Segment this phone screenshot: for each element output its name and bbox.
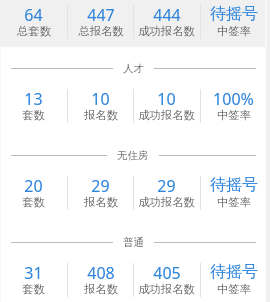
staticText: 31 <box>24 262 43 284</box>
staticText: 20 <box>24 175 43 197</box>
staticText: 报名数 <box>84 282 118 296</box>
staticText: 中签率 <box>217 108 251 122</box>
staticText: 29 <box>91 175 110 197</box>
button[interactable]: 待摇号 <box>200 175 267 215</box>
staticText: 成功报名数 <box>138 24 195 38</box>
button[interactable]: 447 <box>67 4 134 44</box>
staticText: 无住房 <box>117 149 149 162</box>
button[interactable]: 待摇号 <box>200 4 267 44</box>
button[interactable]: 31 <box>0 262 67 302</box>
staticText: 待摇号 <box>210 175 258 195</box>
button[interactable]: 444 <box>133 4 200 44</box>
staticText: 447 <box>87 4 115 26</box>
button[interactable]: 29 <box>67 175 134 215</box>
staticText: 成功报名数 <box>138 195 195 209</box>
staticText: 套数 <box>22 282 45 296</box>
staticText: 100% <box>213 88 254 110</box>
staticText: 13 <box>24 88 43 110</box>
staticText: 报名数 <box>84 195 118 209</box>
button[interactable]: 408 <box>67 262 134 302</box>
button[interactable]: 20 <box>0 175 67 215</box>
staticText: 29 <box>157 175 176 197</box>
button[interactable]: 待摇号 <box>200 262 267 302</box>
staticText: 成功报名数 <box>138 108 195 122</box>
staticText: 待摇号 <box>210 262 258 282</box>
staticText: 总套数 <box>17 24 51 38</box>
staticText: 中签率 <box>217 282 251 296</box>
button[interactable]: 10 <box>133 88 200 128</box>
button[interactable]: 29 <box>133 175 200 215</box>
button[interactable]: 100% <box>200 88 267 128</box>
staticText: 报名数 <box>84 108 118 122</box>
staticText: 人才 <box>123 62 144 75</box>
staticText: 中签率 <box>217 195 251 209</box>
staticText: 10 <box>157 88 176 110</box>
button[interactable]: 405 <box>133 262 200 302</box>
staticText: 总报名数 <box>78 24 124 38</box>
staticText: 64 <box>24 4 43 26</box>
button[interactable]: 10 <box>67 88 134 128</box>
button[interactable]: 13 <box>0 88 67 128</box>
staticText: 10 <box>91 88 110 110</box>
staticText: 成功报名数 <box>138 282 195 296</box>
staticText: 408 <box>87 262 115 284</box>
staticText: 中签率 <box>217 24 251 38</box>
staticText: 待摇号 <box>210 4 258 24</box>
staticText: 普通 <box>123 236 144 249</box>
staticText: 套数 <box>22 108 45 122</box>
staticText: 444 <box>153 4 181 26</box>
staticText: 405 <box>153 262 181 284</box>
staticText: 套数 <box>22 195 45 209</box>
button[interactable]: 64 <box>0 4 67 44</box>
